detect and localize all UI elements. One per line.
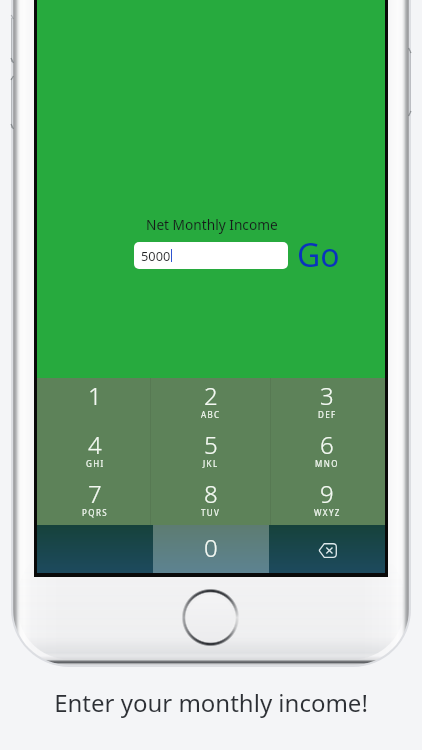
staticText: 7 xyxy=(88,477,102,510)
button[interactable]: 2 xyxy=(153,378,269,427)
staticText: PQRS xyxy=(82,507,109,518)
staticText: 4 xyxy=(88,428,102,461)
staticText: 6 xyxy=(320,428,334,461)
staticText: ABC xyxy=(201,409,221,420)
button[interactable]: 6 xyxy=(269,427,385,476)
staticText: JKL xyxy=(203,458,219,469)
staticText: 5000 xyxy=(141,247,171,264)
button[interactable]: 0 xyxy=(153,525,269,573)
staticText: 1 xyxy=(88,379,102,412)
staticText: TUV xyxy=(201,507,221,518)
button[interactable]: 9 xyxy=(269,476,385,525)
button[interactable]: Blank key xyxy=(37,525,153,573)
staticText: Enter your monthly income! xyxy=(54,686,368,719)
button[interactable]: Go xyxy=(295,233,340,267)
button[interactable]: 4 xyxy=(37,427,153,476)
staticText: DEF xyxy=(318,409,337,420)
staticText: 8 xyxy=(204,477,218,510)
staticText: 0 xyxy=(204,531,218,564)
staticText: 9 xyxy=(320,477,334,510)
button[interactable]: 1 xyxy=(37,378,153,427)
staticText: WXYZ xyxy=(314,507,341,518)
staticText: 5 xyxy=(204,428,218,461)
staticText: 2 xyxy=(204,379,218,412)
staticText: MNO xyxy=(315,458,339,469)
staticText: Net Monthly Income xyxy=(146,215,278,234)
button[interactable]: 5000 xyxy=(134,242,288,269)
button[interactable]: Backspace xyxy=(269,525,385,573)
button[interactable]: 3 xyxy=(269,378,385,427)
staticText: 3 xyxy=(320,379,334,412)
button[interactable]: 7 xyxy=(37,476,153,525)
button[interactable]: 8 xyxy=(153,476,269,525)
staticText: Go xyxy=(297,233,340,267)
button[interactable]: 5 xyxy=(153,427,269,476)
staticText: GHI xyxy=(86,458,105,469)
